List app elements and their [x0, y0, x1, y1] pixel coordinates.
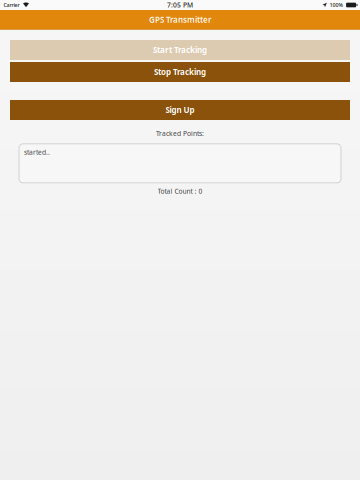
staticText: GPS Transmitter: [149, 14, 211, 25]
staticText: Start Tracking: [153, 45, 207, 55]
staticText: Tracked Points:: [156, 129, 204, 138]
button[interactable]: Stop Tracking: [10, 62, 350, 82]
button[interactable]: Sign Up: [10, 100, 350, 120]
button[interactable]: Start Tracking: [10, 40, 350, 60]
staticText: started..: [24, 148, 50, 157]
staticText: Sign Up: [165, 105, 194, 115]
staticText: 7:05 PM: [167, 1, 193, 9]
staticText: Total Count : 0: [157, 187, 202, 196]
staticText: Carrier: [3, 1, 19, 9]
staticText: Stop Tracking: [154, 67, 206, 77]
staticText: 100%: [330, 1, 344, 9]
